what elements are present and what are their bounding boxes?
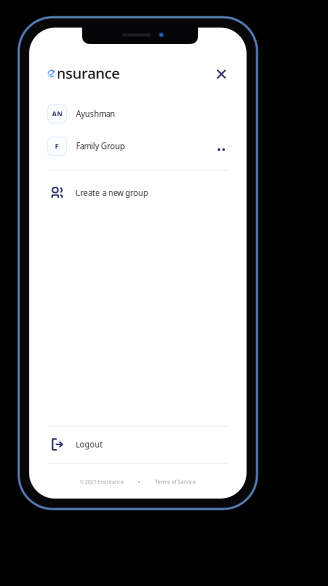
staticText: Create a new group <box>75 187 148 198</box>
button[interactable]: F <box>47 133 229 159</box>
button[interactable]: Logout <box>47 433 229 455</box>
button[interactable]: Terms of Service <box>155 478 196 485</box>
button[interactable]: AN <box>47 101 229 127</box>
staticText: F <box>55 142 59 151</box>
staticText: Logout <box>76 439 103 450</box>
staticText: Family Group <box>76 141 125 151</box>
staticText: Terms of Service <box>155 478 196 485</box>
button[interactable]: Create a new group <box>47 182 229 204</box>
staticText: AN <box>52 109 62 118</box>
staticText: nsurance <box>57 63 120 83</box>
staticText: · <box>138 477 140 486</box>
staticText: Ayushman <box>76 108 115 119</box>
staticText: © 2021 Ensurance <box>80 478 124 485</box>
button[interactable]: Close <box>209 63 229 83</box>
